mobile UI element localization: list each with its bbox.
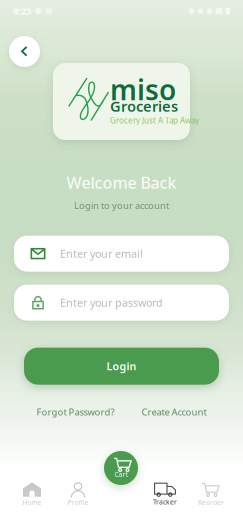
staticText: Forgot Password? (36, 406, 114, 418)
staticText: Groceries (110, 96, 178, 116)
staticText: Reorder (198, 498, 224, 507)
button[interactable]: Profile (57, 482, 99, 507)
staticText: Enter your password (60, 296, 163, 310)
button[interactable]: Enter your password (14, 285, 229, 321)
staticText: Cart (114, 470, 127, 479)
staticText: Login to your account (74, 199, 169, 212)
staticText: Home (22, 498, 41, 507)
button[interactable]: Back (9, 36, 40, 67)
button[interactable]: Tracker (144, 482, 186, 507)
button[interactable]: Reorder (190, 482, 232, 507)
staticText: Login (106, 359, 136, 373)
button[interactable]: Enter your email (14, 236, 229, 272)
staticText: Welcome Back (66, 172, 176, 193)
staticText: 9:23 (13, 5, 31, 17)
staticText: Create Account (141, 406, 206, 418)
button[interactable]: Home (11, 482, 53, 507)
staticText: Grocery Just A Tap Away (110, 115, 199, 126)
staticText: miso (110, 71, 176, 108)
staticText: Profile (67, 498, 88, 507)
button[interactable]: Login (24, 348, 219, 385)
button[interactable]: Cart (104, 451, 138, 485)
button[interactable]: Forgot Password? (36, 406, 114, 418)
staticText: Tracker (153, 497, 177, 506)
staticText: Enter your email (60, 247, 143, 261)
button[interactable]: Create Account (141, 406, 206, 418)
